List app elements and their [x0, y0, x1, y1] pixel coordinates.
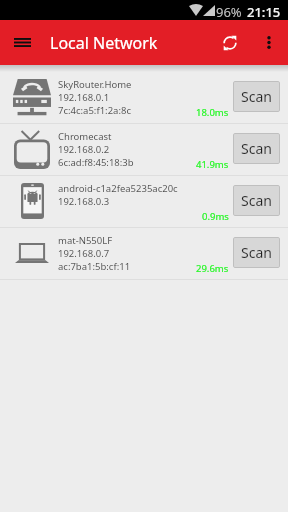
staticText: 21:15 — [247, 3, 281, 21]
button[interactable]: android-c1a2fea5235ac20c — [0, 175, 288, 227]
staticText: 41.9ms — [196, 158, 229, 171]
button[interactable]: Scan — [233, 133, 280, 164]
staticText: Scan — [241, 243, 272, 262]
staticText: 192.168.0.7 — [58, 247, 110, 260]
staticText: mat-N550LF — [58, 234, 113, 247]
staticText: 0.9ms — [202, 210, 229, 223]
button[interactable]: Scan — [233, 81, 280, 112]
staticText: 192.168.0.2 — [58, 143, 110, 156]
button[interactable]: Refresh — [212, 20, 248, 65]
staticText: 192.168.0.1 — [58, 91, 110, 104]
staticText: Scan — [241, 87, 272, 106]
staticText: android-c1a2fea5235ac20c — [58, 182, 178, 195]
staticText: 18.0ms — [196, 106, 229, 119]
button[interactable]: Scan — [233, 237, 280, 268]
staticText: ac:7ba1:5b:cf:11 — [58, 260, 131, 273]
button[interactable]: SkyRouter.Home — [0, 71, 288, 123]
staticText: 6c:ad:f8:45:18:3b — [58, 156, 134, 169]
button[interactable]: Scan — [233, 185, 280, 216]
staticText: 192.168.0.3 — [58, 195, 110, 208]
button[interactable]: Menu — [6, 20, 39, 65]
button[interactable]: Chromecast — [0, 123, 288, 175]
staticText: SkyRouter.Home — [58, 78, 132, 91]
staticText: 29.6ms — [196, 262, 229, 275]
staticText: Local Network — [50, 32, 158, 54]
staticText: 7c:4c:a5:f1:2a:8c — [58, 104, 131, 117]
staticText: Scan — [241, 139, 272, 158]
staticText: 96% — [216, 3, 242, 21]
button[interactable]: mat-N550LF — [0, 227, 288, 279]
staticText: Chromecast — [58, 130, 112, 143]
button[interactable]: More options — [255, 20, 283, 65]
staticText: Scan — [241, 191, 272, 210]
